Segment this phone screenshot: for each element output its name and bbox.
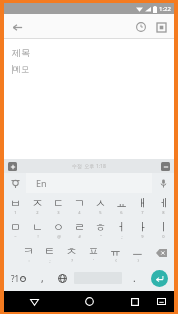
button[interactable]: Collapse <box>161 162 170 171</box>
button[interactable]: Backspace <box>148 241 174 265</box>
staticText: ㅂ <box>10 196 21 210</box>
staticText: 1 <box>14 210 17 215</box>
staticText: 6 <box>120 210 123 215</box>
staticText: 9 <box>141 234 144 239</box>
staticText: ( <box>115 258 117 263</box>
staticText: ㅁ <box>10 220 21 234</box>
button[interactable]: Hide keyboard <box>148 291 174 312</box>
staticText: , <box>41 271 44 285</box>
button[interactable]: ㅔ <box>153 193 174 217</box>
staticText: ㄴ <box>32 220 43 234</box>
button[interactable]: ㅋ <box>18 241 39 265</box>
staticText: 7 <box>141 210 144 215</box>
button[interactable]: Enter <box>151 270 168 287</box>
staticText: ㅔ <box>158 196 169 210</box>
staticText: : <box>28 258 30 263</box>
button[interactable]: ㅓ <box>111 217 132 241</box>
button[interactable]: ㅍ <box>82 241 104 265</box>
staticText: 4 <box>78 210 81 215</box>
button[interactable]: Settings <box>4 173 26 193</box>
staticText: @ <box>57 234 61 239</box>
button[interactable]: Recent apps <box>122 291 148 312</box>
staticText: ㅐ <box>137 196 148 210</box>
staticText: ㅣ <box>158 220 169 234</box>
staticText: 0 <box>162 234 165 239</box>
staticText: ㅎ <box>95 220 106 234</box>
staticText: ㅓ <box>116 220 127 234</box>
button[interactable]: Set reminder <box>131 17 151 37</box>
staticText: ?1 <box>11 273 20 284</box>
button[interactable]: ㅈ <box>26 193 48 217</box>
button[interactable]: ㅁ <box>4 217 26 241</box>
button[interactable]: ㅎ <box>90 217 111 241</box>
staticText: ㄱ <box>74 196 85 210</box>
staticText: ? <box>71 258 73 263</box>
button[interactable]: ㄷ <box>48 193 69 217</box>
button[interactable]: ㅐ <box>132 193 153 217</box>
staticText: ㅌ <box>44 244 55 258</box>
button[interactable]: ㅛ <box>111 193 132 217</box>
staticText: ㄹ <box>74 220 85 234</box>
staticText: 2 <box>36 210 39 215</box>
staticText: 메모 <box>13 64 29 74</box>
staticText: ㄷ <box>53 196 64 210</box>
staticText: . <box>133 271 136 285</box>
staticText: " <box>100 234 102 239</box>
staticText: ! <box>37 234 39 239</box>
staticText: ㅇ <box>53 220 64 234</box>
button[interactable]: En <box>26 173 152 193</box>
button[interactable]: ㅂ <box>4 193 26 217</box>
staticText: # <box>78 234 81 239</box>
button[interactable]: ㅠ <box>104 241 126 265</box>
staticText: ; <box>49 258 51 263</box>
staticText: ~ <box>14 234 17 239</box>
staticText: 수정 오후 1:18 <box>72 163 106 170</box>
staticText: ㅠ <box>110 244 121 258</box>
staticText: 8 <box>162 210 165 215</box>
staticText: ) <box>137 258 139 263</box>
button[interactable]: Add <box>8 162 17 171</box>
staticText: En <box>36 177 47 189</box>
button[interactable]: ㄹ <box>69 217 90 241</box>
button[interactable]: , <box>32 265 52 291</box>
staticText: ㅏ <box>137 220 148 234</box>
button[interactable]: ㅣ <box>153 217 174 241</box>
button[interactable]: ㅏ <box>132 217 153 241</box>
button[interactable]: ㅊ <box>60 241 82 265</box>
button[interactable]: Save <box>151 17 171 37</box>
staticText: 3 <box>57 210 60 215</box>
button[interactable]: Back <box>4 291 64 312</box>
staticText: ㅍ <box>88 244 99 258</box>
staticText: ㅛ <box>116 196 127 210</box>
button[interactable]: Home <box>69 291 109 312</box>
staticText: ' <box>93 258 94 263</box>
button[interactable]: ㅡ <box>126 241 148 265</box>
staticText: ; <box>121 234 123 239</box>
staticText: ㅊ <box>66 244 77 258</box>
button[interactable]: ㅌ <box>39 241 60 265</box>
staticText: ㅈ <box>32 196 43 210</box>
button[interactable]: ㄱ <box>69 193 90 217</box>
button[interactable]: ㅇ <box>48 217 69 241</box>
staticText: 5 <box>99 210 102 215</box>
staticText: 1:22 <box>159 5 171 13</box>
button[interactable]: Back <box>8 18 26 36</box>
button[interactable]: . <box>124 265 144 291</box>
button[interactable]: ㅅ <box>90 193 111 217</box>
staticText: ㅅ <box>95 196 106 210</box>
button[interactable]: ?1 <box>4 265 32 291</box>
button[interactable]: Voice input <box>152 173 174 193</box>
staticText: 제목 <box>12 47 30 58</box>
button[interactable]: ㄴ <box>26 217 48 241</box>
button[interactable]: Change language <box>52 265 72 291</box>
staticText: ㅡ <box>132 244 143 258</box>
staticText: ㅋ <box>23 244 34 258</box>
